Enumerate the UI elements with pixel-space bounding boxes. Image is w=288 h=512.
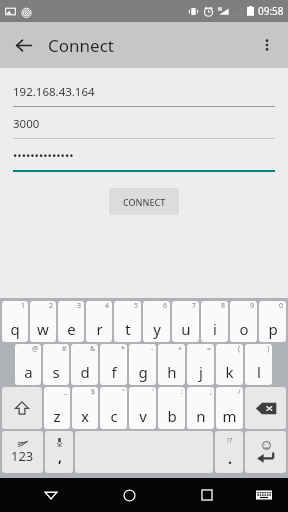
- button[interactable]: 5: [114, 301, 141, 342]
- button[interactable]: Period: [215, 431, 243, 473]
- button[interactable]: 4: [86, 301, 112, 342]
- staticText: 123: [11, 447, 34, 465]
- staticText: h: [167, 362, 177, 382]
- staticText: CONNECT: [123, 196, 166, 208]
- button[interactable]: ": [100, 387, 127, 429]
- staticText: ,: [58, 447, 62, 466]
- staticText: ': [152, 387, 154, 397]
- button[interactable]: ••••••••••••••: [13, 145, 275, 172]
- staticText: b: [167, 406, 177, 426]
- staticText: e: [67, 319, 76, 339]
- button[interactable]: 6: [143, 301, 170, 342]
- button[interactable]: #: [43, 344, 69, 385]
- staticText: ;: [210, 387, 212, 397]
- staticText: 1: [21, 301, 26, 311]
- button[interactable]: $: [72, 387, 98, 429]
- button[interactable]: Enter: [245, 431, 286, 473]
- staticText: j: [199, 362, 203, 382]
- button[interactable]: +: [158, 344, 185, 385]
- button[interactable]: *: [100, 344, 127, 385]
- button[interactable]: 3000: [13, 113, 275, 139]
- button[interactable]: Backspace: [245, 387, 286, 429]
- button[interactable]: Back: [34, 478, 68, 512]
- staticText: ): [267, 344, 270, 354]
- staticText: z: [53, 406, 61, 426]
- button[interactable]: 1: [2, 301, 28, 342]
- staticText: y: [153, 319, 161, 339]
- button[interactable]: 7: [172, 301, 199, 342]
- staticText: d: [80, 362, 90, 382]
- staticText: @: [32, 344, 39, 354]
- staticText: _: [64, 387, 68, 397]
- staticText: 7: [192, 301, 197, 311]
- button[interactable]: ): [245, 344, 272, 385]
- button[interactable]: 8: [201, 301, 228, 342]
- staticText: r: [96, 319, 103, 339]
- staticText: 8: [221, 301, 226, 311]
- staticText: *: [121, 344, 125, 354]
- button[interactable]: Comma: [45, 431, 73, 473]
- staticText: .: [228, 449, 232, 468]
- button[interactable]: :: [158, 387, 185, 429]
- staticText: 2: [49, 301, 54, 311]
- button[interactable]: ': [129, 387, 156, 429]
- button[interactable]: Shift: [2, 387, 42, 429]
- button[interactable]: (: [216, 344, 243, 385]
- staticText: p: [268, 319, 278, 339]
- staticText: 9: [250, 301, 255, 311]
- staticText: u: [181, 319, 191, 339]
- button[interactable]: /: [216, 387, 243, 429]
- button[interactable]: ;: [187, 387, 214, 429]
- staticText: w: [37, 319, 49, 339]
- button[interactable]: @: [15, 344, 41, 385]
- button[interactable]: Back: [6, 28, 40, 62]
- staticText: H: [218, 6, 222, 13]
- staticText: v: [139, 406, 147, 426]
- button[interactable]: Hide keyboard: [249, 480, 279, 510]
- button[interactable]: -: [129, 344, 156, 385]
- staticText: -: [151, 344, 154, 354]
- button[interactable]: _: [44, 387, 70, 429]
- staticText: &: [90, 344, 96, 354]
- staticText: 6: [163, 301, 168, 311]
- button[interactable]: 9: [230, 301, 257, 342]
- button[interactable]: &: [71, 344, 98, 385]
- staticText: !?: [227, 436, 232, 446]
- staticText: n: [196, 406, 206, 426]
- staticText: i: [213, 319, 217, 339]
- staticText: f: [111, 362, 117, 382]
- staticText: 09:58: [258, 4, 284, 18]
- staticText: 4: [105, 301, 110, 311]
- staticText: c: [110, 406, 118, 426]
- staticText: 3000: [13, 116, 40, 132]
- button[interactable]: 3: [58, 301, 84, 342]
- button[interactable]: Symbols: [2, 431, 43, 473]
- staticText: k: [225, 362, 234, 382]
- button[interactable]: More options: [250, 28, 284, 62]
- staticText: a: [24, 362, 33, 382]
- button[interactable]: Recents: [190, 478, 224, 512]
- staticText: $: [91, 387, 96, 397]
- button[interactable]: Home: [112, 478, 146, 512]
- staticText: l: [257, 362, 261, 382]
- staticText: m: [222, 406, 237, 426]
- staticText: +: [178, 344, 183, 354]
- button[interactable]: 0: [259, 301, 286, 342]
- staticText: ••••••••••••••: [13, 148, 74, 164]
- staticText: =: [207, 344, 212, 354]
- staticText: o: [239, 319, 249, 339]
- button[interactable]: CONNECT: [109, 188, 179, 215]
- staticText: Connect: [48, 34, 114, 57]
- staticText: ": [122, 387, 125, 397]
- button[interactable]: 192.168.43.164: [13, 81, 275, 107]
- staticText: 192.168.43.164: [13, 84, 95, 100]
- button[interactable]: 2: [30, 301, 56, 342]
- staticText: :: [181, 387, 183, 397]
- staticText: 5: [134, 301, 139, 311]
- staticText: q: [10, 319, 20, 339]
- button[interactable]: =: [187, 344, 214, 385]
- staticText: x: [81, 406, 89, 426]
- staticText: 3: [77, 301, 82, 311]
- staticText: 0: [279, 301, 284, 311]
